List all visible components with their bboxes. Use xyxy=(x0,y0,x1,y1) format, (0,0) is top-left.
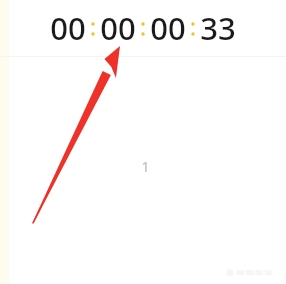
staticText: 1 xyxy=(141,157,150,176)
staticText: 00 xyxy=(100,7,136,49)
staticText: 00 xyxy=(150,7,186,49)
staticText: 00 xyxy=(50,7,86,49)
button[interactable]: 00 xyxy=(50,7,236,49)
other: Annotation arrow pointing at timer xyxy=(0,0,286,284)
staticText: 33 xyxy=(200,7,236,49)
